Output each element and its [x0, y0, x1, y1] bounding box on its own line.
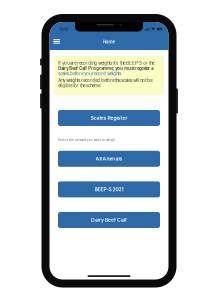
button[interactable]: All Animals	[58, 151, 160, 167]
staticText: 16:53	[59, 27, 68, 31]
staticText: scales before you record weights.	[58, 71, 122, 76]
staticText: BEEP-S 2021	[94, 186, 123, 192]
staticText: Select the animals you want to weigh	[58, 138, 115, 142]
staticText: Scales Register	[90, 115, 127, 121]
staticText: eligible for the scheme	[58, 83, 100, 88]
button[interactable]: Menu	[50, 36, 63, 47]
staticText: Dairy Beef Calf	[91, 217, 127, 223]
staticText: Any weights recorded before the scales w…	[58, 78, 152, 83]
button[interactable]: Scales Register	[58, 110, 160, 126]
staticText: Dairy Beef Calf Programme, you must regi…	[58, 66, 153, 71]
staticText: All Animals	[95, 156, 122, 162]
button[interactable]: Dairy Beef Calf	[58, 212, 160, 228]
button[interactable]: BEEP-S 2021	[58, 181, 160, 197]
staticText: Home	[102, 39, 115, 45]
staticText: If you are recording weights for the BEE…	[58, 61, 154, 66]
